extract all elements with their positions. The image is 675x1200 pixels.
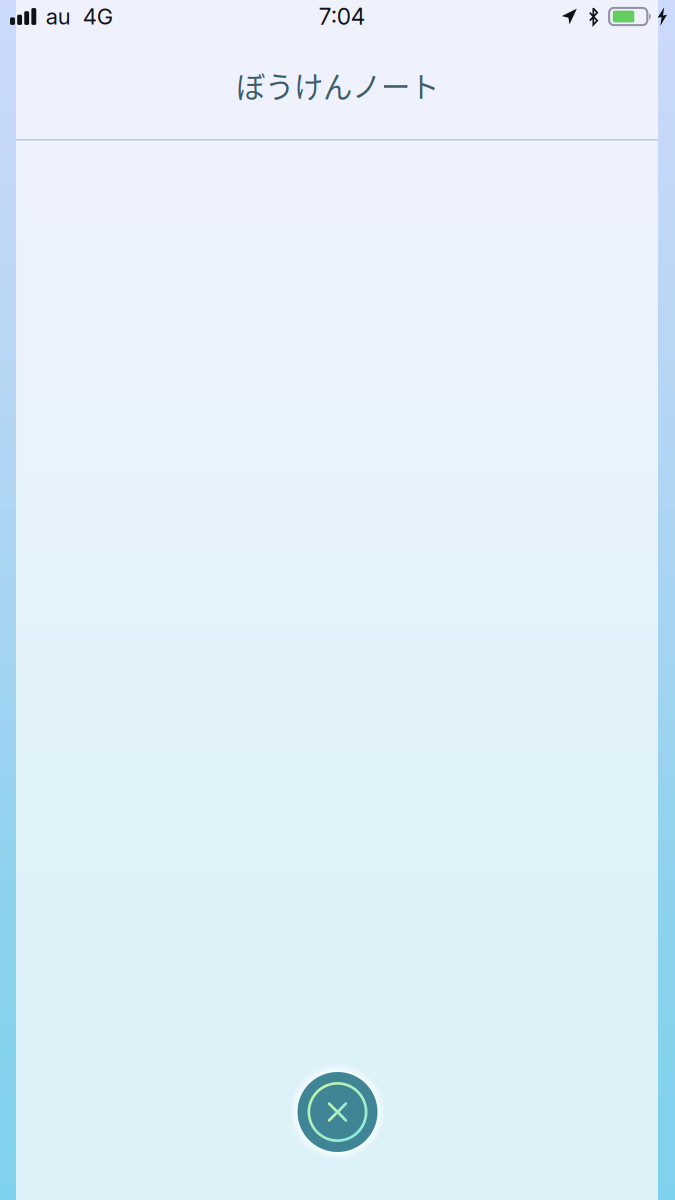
staticText: ぼうけんノート [236,64,439,106]
button[interactable]: とじる [289,1064,385,1160]
staticText: 7:04 [319,3,366,30]
staticText: 4G [83,3,113,30]
staticText: au [46,3,71,30]
